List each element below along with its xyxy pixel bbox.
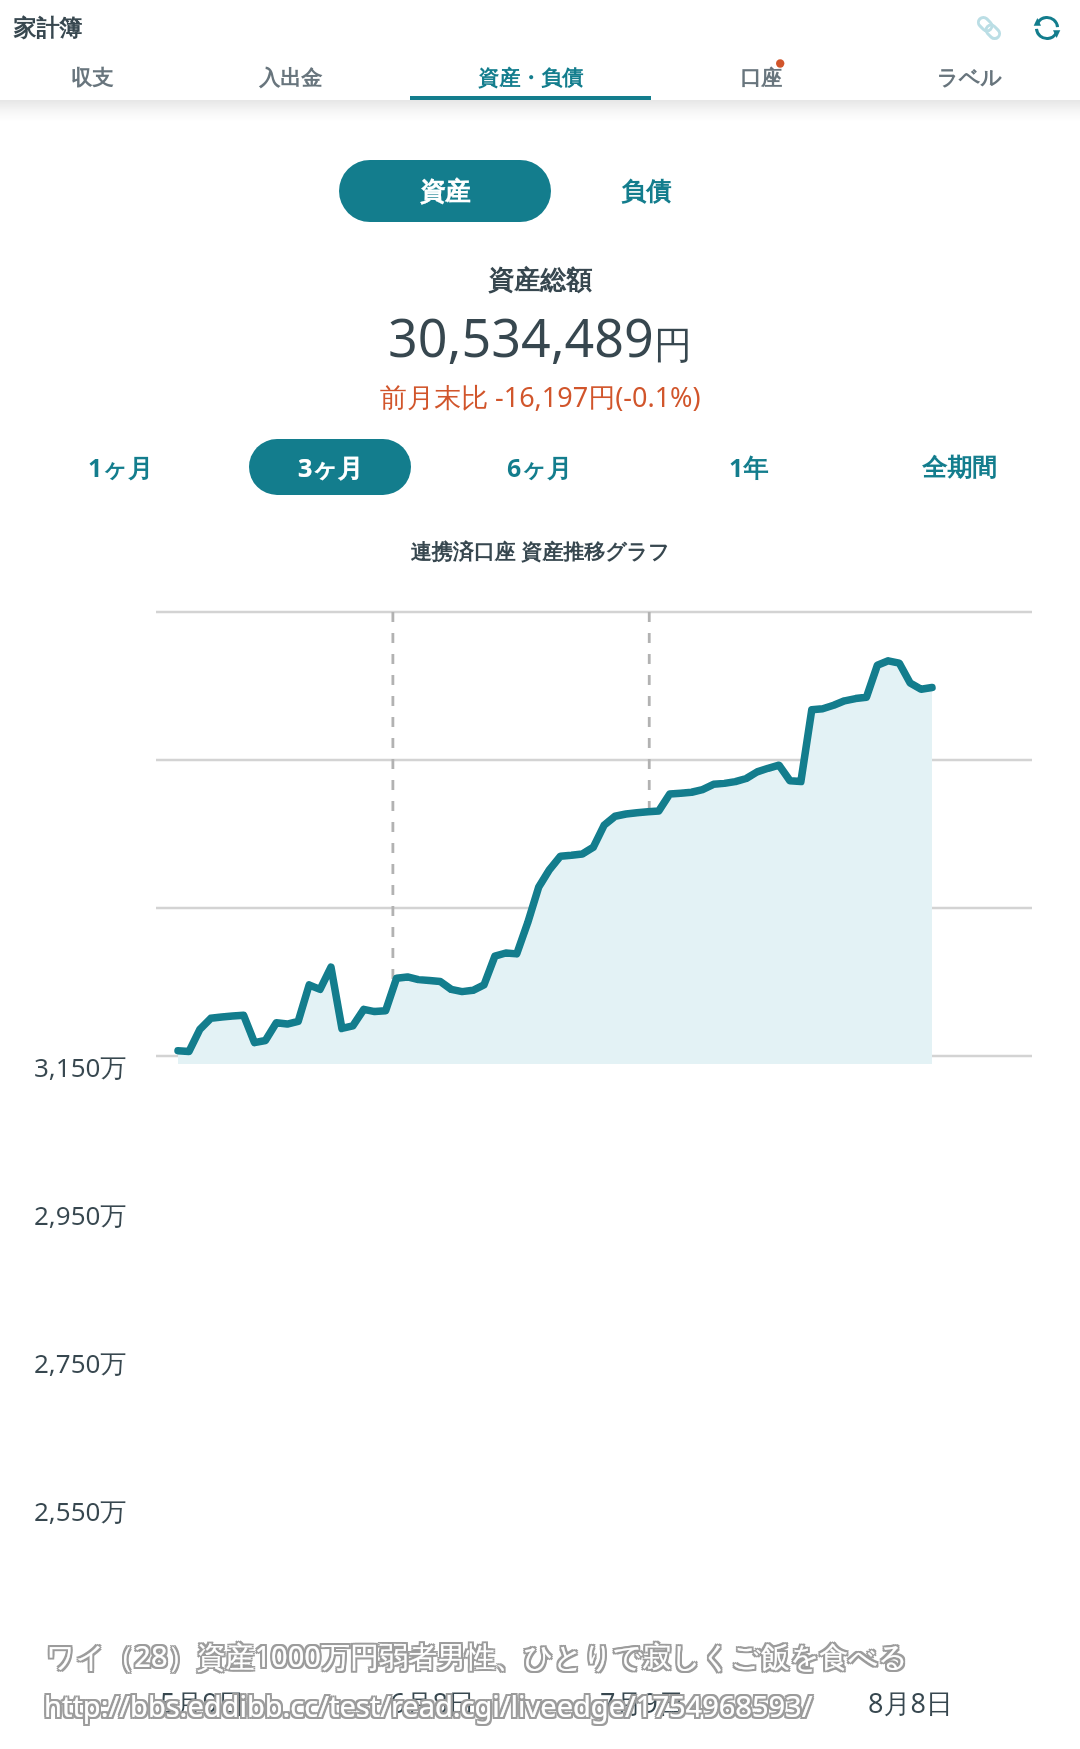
staticText: http://bbs.eddibb.cc/test/read.cgi/livee… <box>46 1688 815 1727</box>
staticText: http://bbs.eddibb.cc/test/read.cgi/livee… <box>46 1686 815 1725</box>
staticText: ワイ（28）資産1000万円弱者男性、ひとりで寂しくご飯を食べる <box>48 1636 910 1676</box>
staticText: ワイ（28）資産1000万円弱者男性、ひとりで寂しくご飯を食べる <box>46 1636 908 1676</box>
staticText: http://bbs.eddibb.cc/test/read.cgi/livee… <box>46 1684 815 1723</box>
staticText: ラベル <box>937 65 1002 91</box>
button[interactable]: 収支 <box>0 56 184 100</box>
staticText: 2,550万 <box>34 1493 127 1529</box>
staticText: 資産・負債 <box>478 65 583 91</box>
staticText: 前月末比 -16,197円(-0.1%) <box>380 378 701 415</box>
button[interactable]: 口座 <box>664 56 858 100</box>
staticText: ワイ（28）資産1000万円弱者男性、ひとりで寂しくご飯を食べる <box>48 1638 910 1678</box>
staticText: ワイ（28）資産1000万円弱者男性、ひとりで寂しくご飯を食べる <box>48 1634 910 1674</box>
staticText: 8月8日 <box>868 1684 953 1721</box>
staticText: 6月8日 <box>390 1684 475 1721</box>
staticText: ワイ（28）資産1000万円弱者男性、ひとりで寂しくご飯を食べる <box>46 1638 908 1678</box>
staticText: 1年 <box>729 450 769 484</box>
staticText: 1ヶ月 <box>88 450 153 484</box>
button[interactable]: 負債 <box>551 160 741 222</box>
staticText: 全期間 <box>922 452 997 483</box>
button[interactable]: 全期間 <box>854 439 1064 495</box>
staticText: 資産 <box>420 176 470 207</box>
staticText: ワイ（28）資産1000万円弱者男性、ひとりで寂しくご飯を食べる <box>44 1636 906 1676</box>
staticText: http://bbs.eddibb.cc/test/read.cgi/livee… <box>42 1684 811 1723</box>
staticText: http://bbs.eddibb.cc/test/read.cgi/livee… <box>42 1688 811 1727</box>
staticText: 3ヶ月 <box>298 450 363 484</box>
staticText: 7月9日 <box>600 1684 685 1721</box>
staticText: ワイ（28）資産1000万円弱者男性、ひとりで寂しくご飯を食べる <box>44 1638 906 1678</box>
staticText: ワイ（28）資産1000万円弱者男性、ひとりで寂しくご飯を食べる <box>46 1634 908 1674</box>
staticText: 口座 <box>740 65 782 91</box>
staticText: http://bbs.eddibb.cc/test/read.cgi/livee… <box>44 1684 813 1723</box>
button[interactable]: ラベル <box>858 56 1080 100</box>
staticText: 負債 <box>621 176 671 207</box>
button[interactable]: 1ヶ月 <box>16 439 225 495</box>
staticText: 6ヶ月 <box>507 450 572 484</box>
staticText: 連携済口座 資産推移グラフ <box>0 537 1080 566</box>
button[interactable]: 6ヶ月 <box>434 439 644 495</box>
button[interactable]: Link accounts <box>966 5 1012 51</box>
staticText: http://bbs.eddibb.cc/test/read.cgi/livee… <box>44 1686 813 1725</box>
staticText: 2,950万 <box>34 1197 127 1233</box>
staticText: 5月9日 <box>160 1684 245 1721</box>
staticText: 30,534,489 <box>388 301 654 372</box>
staticText: 3,150万 <box>34 1049 127 1085</box>
staticText: 資産総額 <box>488 264 592 297</box>
staticText: ワイ（28）資産1000万円弱者男性、ひとりで寂しくご飯を食べる <box>44 1634 906 1674</box>
staticText: http://bbs.eddibb.cc/test/read.cgi/livee… <box>42 1686 811 1725</box>
staticText: http://bbs.eddibb.cc/test/read.cgi/livee… <box>44 1688 813 1727</box>
staticText: 2,750万 <box>34 1345 127 1381</box>
staticText: 家計簿 <box>13 14 82 43</box>
staticText: 円 <box>654 321 692 369</box>
staticText: 入出金 <box>259 65 322 91</box>
button[interactable]: Refresh <box>1024 5 1070 51</box>
staticText: 収支 <box>71 65 113 91</box>
button[interactable]: 3ヶ月 <box>249 439 411 495</box>
button[interactable]: 資産 <box>339 160 551 222</box>
button[interactable]: 1年 <box>644 439 854 495</box>
button[interactable]: 資産・負債 <box>396 56 664 100</box>
button[interactable]: 入出金 <box>184 56 396 100</box>
